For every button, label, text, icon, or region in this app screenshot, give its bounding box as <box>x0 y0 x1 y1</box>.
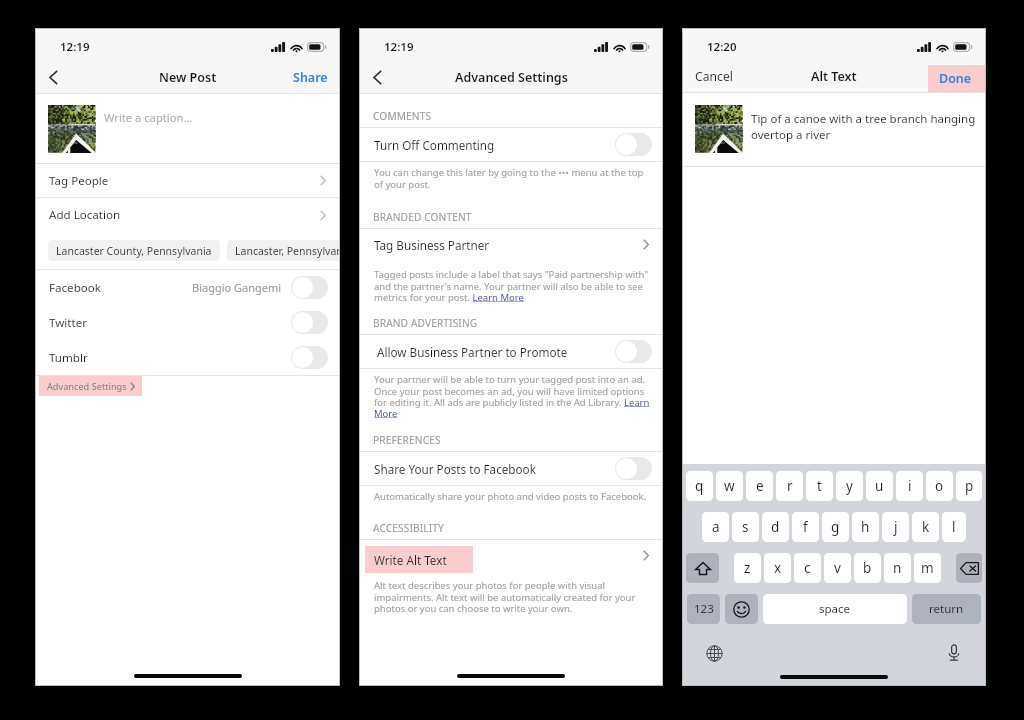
button[interactable]: return <box>912 594 981 624</box>
staticText: Alt text describes your photos for peopl… <box>374 579 649 614</box>
staticText: j <box>894 518 898 536</box>
button[interactable]: m <box>914 553 941 583</box>
button[interactable]: Cancel <box>683 63 745 90</box>
staticText: Turn Off Commenting <box>374 137 495 153</box>
button[interactable]: Write a caption... <box>36 94 339 163</box>
button[interactable]: o <box>926 471 953 501</box>
staticText: BRAND ADVERTISING <box>373 316 478 330</box>
staticText: return <box>929 601 964 617</box>
button[interactable]: Allow Business Partner to Promote <box>377 335 652 368</box>
staticText: a <box>712 518 720 536</box>
staticText: Biaggio Gangemi <box>192 280 282 295</box>
button[interactable]: Done <box>928 65 985 92</box>
button[interactable]: Shift <box>686 553 719 583</box>
button[interactable]: Tag People <box>49 164 326 197</box>
staticText: Tag Business Partner <box>374 237 490 253</box>
staticText: 12:19 <box>384 39 414 55</box>
button[interactable]: Backspace <box>956 553 982 583</box>
button[interactable]: Twitter <box>49 305 328 340</box>
button[interactable]: 123 <box>687 594 720 624</box>
button[interactable]: r <box>776 471 803 501</box>
button[interactable]: v <box>824 553 851 583</box>
button[interactable]: Add Location <box>49 198 326 232</box>
button[interactable]: i <box>896 471 923 501</box>
button[interactable]: c <box>794 553 821 583</box>
staticText: PREFERENCES <box>373 433 441 447</box>
button[interactable]: g <box>822 512 849 542</box>
button[interactable]: b <box>854 553 881 583</box>
staticText: Done <box>939 70 972 87</box>
button[interactable]: Advanced Settings <box>39 376 142 396</box>
staticText: Share Your Posts to Facebook <box>374 461 536 477</box>
staticText: r <box>787 477 793 495</box>
button[interactable]: s <box>732 512 759 542</box>
button[interactable]: Lancaster County, Pennsylvania <box>48 240 220 261</box>
button[interactable] <box>291 276 328 299</box>
button[interactable] <box>291 311 328 334</box>
button[interactable] <box>615 457 652 480</box>
button[interactable]: z <box>734 553 761 583</box>
button[interactable]: Share <box>282 63 339 91</box>
button[interactable]: j <box>882 512 909 542</box>
staticText: m <box>921 559 934 577</box>
staticText: Your partner will be able to turn your t… <box>374 373 651 419</box>
staticText: l <box>952 518 956 536</box>
staticText: 12:19 <box>60 39 90 55</box>
staticText: w <box>724 477 735 495</box>
button[interactable]: u <box>866 471 893 501</box>
button[interactable] <box>615 340 652 363</box>
button[interactable]: d <box>762 512 789 542</box>
staticText: i <box>908 477 912 495</box>
staticText: p <box>965 477 974 495</box>
button[interactable]: Tag Business Partner <box>360 229 649 260</box>
button[interactable]: q <box>686 471 713 501</box>
staticText: Tumblr <box>49 350 88 366</box>
staticText: k <box>922 518 930 536</box>
staticText: Twitter <box>49 315 88 331</box>
button[interactable]: Turn Off Commenting <box>374 128 652 161</box>
button[interactable]: a <box>702 512 729 542</box>
staticText: h <box>861 518 870 536</box>
button[interactable]: y <box>836 471 863 501</box>
button[interactable]: Back <box>41 65 65 89</box>
button[interactable]: Facebook <box>49 270 328 305</box>
staticText: q <box>695 477 704 495</box>
button[interactable]: Change keyboard <box>702 641 726 665</box>
staticText: f <box>803 518 808 536</box>
button[interactable]: Write Alt Text <box>360 540 649 571</box>
button[interactable] <box>615 133 652 156</box>
button[interactable]: x <box>764 553 791 583</box>
staticText: z <box>744 559 751 577</box>
button[interactable]: n <box>884 553 911 583</box>
button[interactable]: t <box>806 471 833 501</box>
button[interactable]: Emoji <box>725 594 758 624</box>
button[interactable]: Lancaster, Pennsylvania <box>227 240 339 261</box>
staticText: space <box>819 601 851 617</box>
button[interactable]: Share Your Posts to Facebook <box>374 452 652 485</box>
staticText: s <box>742 518 749 536</box>
staticText: You can change this later by going to th… <box>374 166 649 190</box>
staticText: e <box>756 477 764 495</box>
staticText: Allow Business Partner to Promote <box>377 344 568 360</box>
staticText: Tag People <box>49 173 109 189</box>
button[interactable]: Tumblr <box>49 340 328 375</box>
button[interactable]: Tip of a canoe with a tree branch hangin… <box>683 93 985 166</box>
staticText: Tip of a canoe with a tree branch hangin… <box>751 111 989 143</box>
button[interactable]: p <box>956 471 982 501</box>
button[interactable]: Back <box>365 65 389 89</box>
button[interactable]: e <box>746 471 773 501</box>
button[interactable]: w <box>716 471 743 501</box>
staticText: Advanced Settings <box>47 380 127 393</box>
staticText: Cancel <box>695 68 733 85</box>
staticText: ACCESSIBILITY <box>373 521 444 535</box>
button[interactable]: f <box>792 512 819 542</box>
button[interactable]: h <box>852 512 879 542</box>
button[interactable]: Dictation <box>942 641 966 665</box>
staticText: b <box>863 559 872 577</box>
button[interactable]: k <box>912 512 939 542</box>
staticText: x <box>774 559 782 577</box>
staticText: t <box>817 477 822 495</box>
button[interactable] <box>291 346 328 369</box>
button[interactable]: l <box>942 512 966 542</box>
button[interactable]: space <box>763 594 907 624</box>
